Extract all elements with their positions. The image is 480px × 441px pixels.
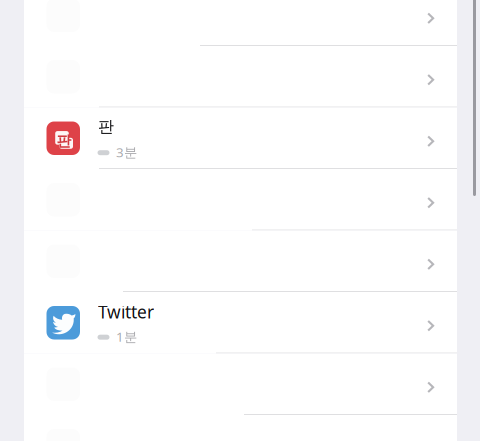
staticText: Twitter <box>98 300 154 323</box>
staticText: 판 <box>56 132 71 150</box>
button[interactable]: App notification settings <box>24 353 457 415</box>
staticText: 1분 <box>116 328 137 345</box>
button[interactable]: 판 <box>24 107 457 169</box>
button[interactable]: App notification settings <box>24 0 457 46</box>
button[interactable]: App notification settings <box>24 230 457 292</box>
button[interactable]: App notification settings <box>24 46 457 107</box>
button[interactable]: Twitter <box>24 292 457 353</box>
staticText: 판 <box>98 117 114 136</box>
staticText: 3분 <box>116 143 137 161</box>
